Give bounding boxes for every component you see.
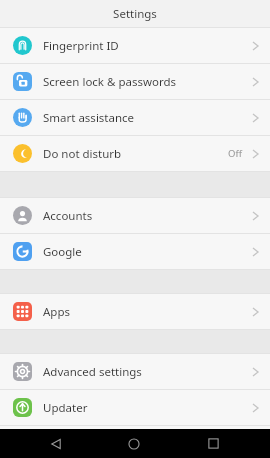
button[interactable]: Apps	[0, 294, 270, 329]
button[interactable]: Home	[112, 429, 156, 458]
button[interactable]: Fingerprint ID	[0, 28, 270, 63]
staticText: Google	[43, 244, 82, 260]
staticText: Apps	[43, 304, 71, 320]
button[interactable]: Accounts	[0, 198, 270, 233]
staticText: Settings	[113, 6, 157, 22]
staticText: Screen lock & passwords	[43, 74, 177, 90]
staticText: Do not disturb	[43, 146, 122, 162]
button[interactable]: Google	[0, 234, 270, 269]
button[interactable]: Back	[34, 429, 78, 458]
staticText: Advanced settings	[43, 364, 142, 380]
button[interactable]: Advanced settings	[0, 354, 270, 389]
staticText: Accounts	[43, 208, 93, 224]
staticText: Fingerprint ID	[43, 38, 119, 54]
button[interactable]: Screen lock & passwords	[0, 64, 270, 99]
button[interactable]: Do not disturb	[0, 136, 270, 171]
button[interactable]: Recent apps	[191, 429, 235, 458]
staticText: Updater	[43, 400, 88, 416]
button[interactable]: Smart assistance	[0, 100, 270, 135]
button[interactable]: Updater	[0, 390, 270, 425]
staticText: Smart assistance	[43, 110, 135, 126]
staticText: Off	[228, 147, 242, 160]
